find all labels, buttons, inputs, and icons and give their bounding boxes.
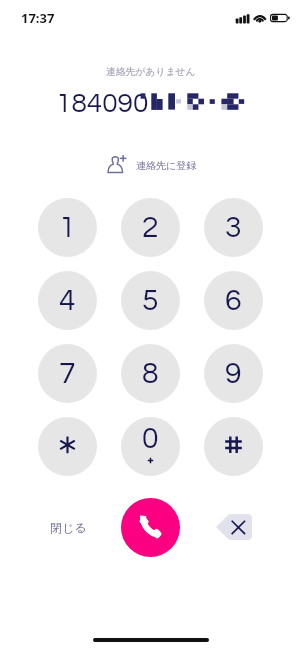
staticText: 0 <box>142 423 159 454</box>
staticText: 連絡先に登録 <box>136 159 197 172</box>
staticText: 184090 <box>56 89 149 118</box>
staticText: 6 <box>225 285 242 316</box>
button[interactable]: 0 <box>121 417 180 476</box>
button[interactable]: 5 <box>121 271 180 330</box>
button[interactable]: 4 <box>38 271 97 330</box>
staticText: 9 <box>225 358 242 389</box>
button[interactable]: 7 <box>38 344 97 403</box>
button[interactable]: 6 <box>204 271 263 330</box>
staticText: 閉じる <box>50 520 87 535</box>
staticText: 17:37 <box>21 9 55 27</box>
button[interactable]: 2 <box>121 198 180 257</box>
button[interactable] <box>38 417 97 476</box>
staticText: 8 <box>142 358 159 389</box>
staticText: 2 <box>142 212 159 243</box>
staticText: 5 <box>142 285 159 316</box>
button[interactable]: 3 <box>204 198 263 257</box>
staticText: 連絡先がありません <box>106 66 196 78</box>
staticText: 4 <box>59 285 76 316</box>
staticText: 3 <box>225 212 242 243</box>
button[interactable] <box>204 417 263 476</box>
button[interactable]: Call <box>121 498 180 557</box>
staticText: 1 <box>59 212 76 243</box>
button[interactable]: 9 <box>204 344 263 403</box>
button[interactable]: 連絡先に登録 <box>101 150 204 179</box>
staticText: 7 <box>59 358 76 389</box>
button[interactable]: 1 <box>38 198 97 257</box>
button[interactable]: Backspace <box>216 514 252 540</box>
button[interactable]: 8 <box>121 344 180 403</box>
button[interactable]: 閉じる <box>44 514 93 541</box>
